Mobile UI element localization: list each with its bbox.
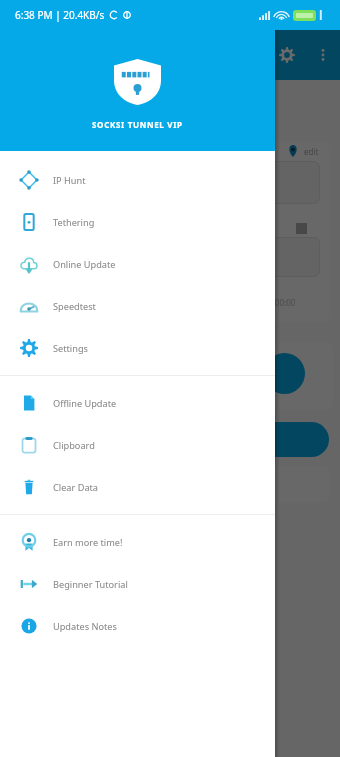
staticText: Connected 00:00:00 xyxy=(221,297,296,308)
button[interactable]: Online Update xyxy=(0,243,275,285)
button[interactable]: Speedtest xyxy=(0,285,275,327)
staticText: Offline Update xyxy=(53,397,117,410)
button[interactable]: Beginner Tutorial xyxy=(0,563,275,605)
staticText: Speedtest xyxy=(53,300,96,313)
staticText: Online Update xyxy=(53,258,116,271)
button[interactable]: Connect xyxy=(264,353,305,394)
staticText: Clear Data xyxy=(53,481,99,494)
staticText: Earn more time! xyxy=(53,536,123,549)
button[interactable]: More options xyxy=(308,40,337,69)
staticText: IP Hunt xyxy=(53,174,86,187)
staticText: Select Server xyxy=(20,146,69,157)
button[interactable] xyxy=(20,161,320,204)
button[interactable]: Earn more time! xyxy=(0,521,275,563)
button[interactable] xyxy=(20,237,320,277)
staticText: Settings xyxy=(53,342,88,355)
staticText: Clipboard xyxy=(53,439,95,452)
staticText: Updates Notes xyxy=(53,620,117,633)
button[interactable]: Updates Notes xyxy=(0,605,275,647)
staticText: Mode xyxy=(20,223,42,234)
button[interactable]: Tethering xyxy=(0,201,275,243)
button[interactable]: IP Hunt xyxy=(0,159,275,201)
staticText: SOCKSI TUNNEL VIP xyxy=(92,119,183,130)
button[interactable]: Settings xyxy=(0,327,275,369)
button[interactable]: Clear Data xyxy=(0,466,275,508)
button[interactable]: Settings xyxy=(272,40,301,69)
button[interactable]: Offline Update xyxy=(0,382,275,424)
staticText: Tethering xyxy=(53,216,95,229)
staticText: edit xyxy=(304,146,319,157)
button[interactable]: Clipboard xyxy=(0,424,275,466)
staticText: 6:38 PM | 20.4KB/s xyxy=(15,8,105,22)
staticText: Beginner Tutorial xyxy=(53,578,128,591)
button[interactable] xyxy=(11,422,329,457)
